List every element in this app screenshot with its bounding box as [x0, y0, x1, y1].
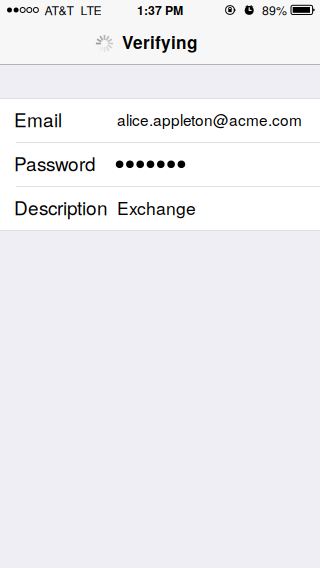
button[interactable]: Password [0, 143, 320, 186]
staticText: alice.appleton@acme.com [117, 108, 302, 130]
staticText: 89% [262, 1, 287, 19]
staticText: Verifying [122, 30, 198, 54]
staticText: 1:37 PM [137, 1, 183, 19]
staticText: Email [14, 105, 62, 132]
button[interactable]: Email [0, 99, 320, 142]
staticText: Exchange [117, 195, 196, 220]
staticText: Password [14, 149, 96, 176]
staticText: LTE [80, 1, 101, 19]
staticText: Description [14, 193, 108, 220]
staticText: AT&T [44, 1, 73, 19]
button[interactable]: Description [0, 187, 320, 230]
